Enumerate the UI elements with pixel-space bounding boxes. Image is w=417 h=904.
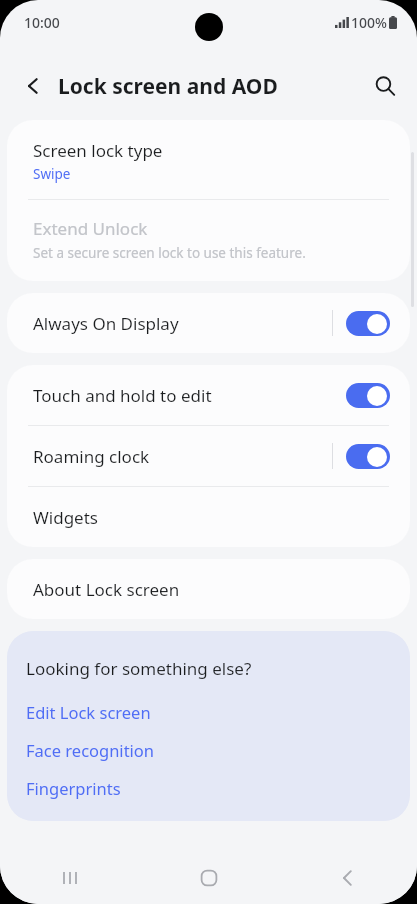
button[interactable]: Roaming clock bbox=[7, 426, 410, 486]
staticText: Touch and hold to edit bbox=[33, 384, 332, 407]
button[interactable] bbox=[346, 383, 390, 408]
button[interactable]: Back bbox=[10, 63, 56, 109]
button[interactable]: About Lock screen bbox=[7, 559, 410, 619]
button[interactable]: Back bbox=[278, 852, 417, 904]
button[interactable]: Home bbox=[139, 852, 278, 904]
button[interactable]: Widgets bbox=[7, 487, 410, 547]
staticText: Edit Lock screen bbox=[26, 701, 151, 723]
staticText: Widgets bbox=[33, 506, 98, 529]
staticText: Looking for something else? bbox=[26, 657, 252, 680]
staticText: Set a secure screen lock to use this fea… bbox=[33, 244, 306, 262]
button[interactable]: Fingerprints bbox=[7, 769, 410, 807]
staticText: Always On Display bbox=[33, 312, 332, 335]
button[interactable]: Screen lock type bbox=[7, 120, 410, 199]
button[interactable] bbox=[346, 311, 390, 336]
staticText: Swipe bbox=[33, 165, 71, 183]
button[interactable]: Search bbox=[362, 63, 408, 109]
button[interactable]: Recents bbox=[0, 852, 139, 904]
button[interactable]: Face recognition bbox=[7, 731, 410, 769]
button[interactable]: Edit Lock screen bbox=[7, 693, 410, 731]
button[interactable]: Touch and hold to edit bbox=[7, 365, 410, 425]
button[interactable] bbox=[346, 444, 390, 469]
staticText: About Lock screen bbox=[33, 578, 180, 601]
staticText: Screen lock type bbox=[33, 139, 163, 162]
staticText: Roaming clock bbox=[33, 445, 332, 468]
staticText: Face recognition bbox=[26, 739, 155, 761]
staticText: Extend Unlock bbox=[33, 217, 148, 240]
staticText: Lock screen and AOD bbox=[58, 72, 278, 101]
button[interactable]: Always On Display bbox=[7, 293, 410, 353]
button[interactable]: Extend Unlock bbox=[7, 200, 410, 281]
staticText: 100% bbox=[351, 13, 387, 32]
staticText: Fingerprints bbox=[26, 777, 121, 799]
staticText: 10:00 bbox=[24, 13, 60, 32]
